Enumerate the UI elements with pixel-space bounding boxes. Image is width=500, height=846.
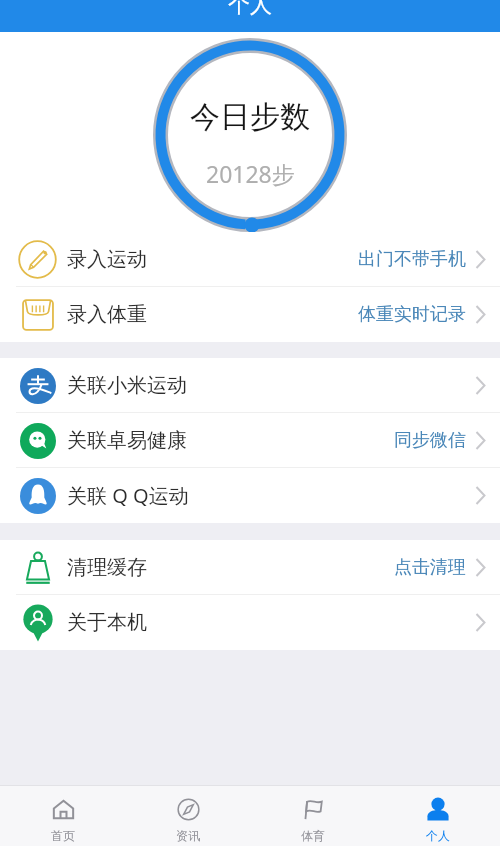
- button[interactable]: 关联小米运动: [0, 358, 500, 413]
- staticText: 关于本机: [67, 610, 147, 635]
- other: 关于本机: [19, 604, 57, 642]
- button[interactable]: 资讯: [125, 786, 250, 846]
- staticText: 体重实时记录: [358, 303, 466, 326]
- staticText: 同步微信: [394, 429, 466, 452]
- staticText: 清理缓存: [67, 555, 147, 580]
- staticText: 个人: [426, 828, 450, 843]
- staticText: 关联卓易健康: [67, 428, 187, 453]
- button[interactable]: 录入运动: [0, 232, 500, 287]
- button[interactable]: 关联卓易健康: [0, 413, 500, 468]
- other: 清理缓存: [21, 551, 55, 585]
- staticText: 今日步数: [190, 98, 310, 136]
- other: 关联QQ运动: [20, 478, 56, 514]
- button[interactable]: 个人: [375, 786, 500, 846]
- other: 录入运动: [18, 240, 57, 279]
- staticText: 体育: [301, 828, 325, 843]
- button[interactable]: 首页: [0, 786, 125, 846]
- button[interactable]: 关联QQ运动: [0, 468, 500, 523]
- staticText: 关联小米运动: [67, 373, 187, 398]
- staticText: 录入运动: [67, 247, 147, 272]
- other: 关联卓易健康: [20, 423, 56, 459]
- staticText: 点击清理: [394, 556, 466, 579]
- staticText: 资讯: [176, 828, 200, 843]
- button[interactable]: 清理缓存: [0, 540, 500, 595]
- staticText: 个人: [228, 0, 272, 19]
- staticText: 录入体重: [67, 302, 147, 327]
- button[interactable]: 关于本机: [0, 595, 500, 650]
- staticText: 出门不带手机: [358, 248, 466, 271]
- button[interactable]: 体育: [250, 786, 375, 846]
- staticText: 首页: [51, 828, 75, 843]
- staticText: 20128步: [206, 158, 295, 189]
- other: 关联小米运动: [20, 368, 56, 404]
- staticText: 关联 Q Q运动: [67, 482, 189, 509]
- other: 录入体重: [21, 298, 55, 332]
- button[interactable]: 录入体重: [0, 287, 500, 342]
- button[interactable]: 今日步数: [153, 38, 347, 232]
